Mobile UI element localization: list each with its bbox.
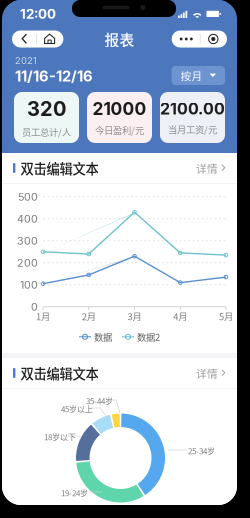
staticText: 100 bbox=[20, 278, 38, 291]
staticText: 2021 bbox=[15, 55, 37, 66]
staticText: 300 bbox=[17, 234, 38, 247]
staticText: 双击编辑文本 bbox=[20, 363, 98, 383]
staticText: 400 bbox=[17, 212, 38, 225]
staticText: 员工总计/人 bbox=[22, 125, 71, 138]
staticText: 45岁以上 bbox=[61, 403, 93, 415]
staticText: 18岁以下 bbox=[44, 431, 76, 443]
staticText: 12:00 bbox=[20, 6, 56, 22]
staticText: 25-34岁 bbox=[188, 445, 215, 457]
staticText: 2100.00 bbox=[160, 99, 225, 118]
button[interactable]: Back bbox=[12, 30, 36, 47]
staticText: 4月 bbox=[173, 309, 187, 323]
staticText: 21000 bbox=[92, 98, 146, 119]
staticText: 按月 bbox=[181, 68, 203, 83]
button[interactable]: More bbox=[172, 30, 200, 47]
staticText: 320 bbox=[27, 97, 66, 121]
staticText: 详情 bbox=[196, 160, 218, 176]
staticText: 双击编辑文本 bbox=[20, 158, 98, 178]
staticText: 5月 bbox=[219, 309, 233, 323]
button[interactable]: 双击编辑文本 bbox=[2, 358, 237, 388]
staticText: 200 bbox=[17, 256, 38, 269]
staticText: 数据 bbox=[94, 330, 112, 343]
staticText: 报表 bbox=[104, 28, 134, 50]
button[interactable]: 双击编辑文本 bbox=[2, 153, 237, 183]
button[interactable]: Home bbox=[37, 30, 63, 47]
button[interactable]: 按月 bbox=[172, 66, 225, 85]
staticText: 35-44岁 bbox=[86, 395, 113, 407]
staticText: 当月工资/元 bbox=[168, 122, 217, 136]
staticText: 2月 bbox=[82, 309, 96, 323]
staticText: 详情 bbox=[196, 365, 218, 381]
staticText: 1月 bbox=[36, 309, 50, 323]
staticText: 0 bbox=[31, 300, 38, 313]
staticText: 今日盈利/元 bbox=[95, 123, 144, 137]
staticText: 19-24岁 bbox=[61, 487, 88, 499]
staticText: 数据2 bbox=[137, 330, 160, 343]
staticText: 3月 bbox=[127, 309, 141, 323]
staticText: 11/16-12/16 bbox=[15, 67, 93, 85]
staticText: 500 bbox=[18, 190, 38, 203]
button[interactable]: Close bbox=[201, 30, 227, 47]
